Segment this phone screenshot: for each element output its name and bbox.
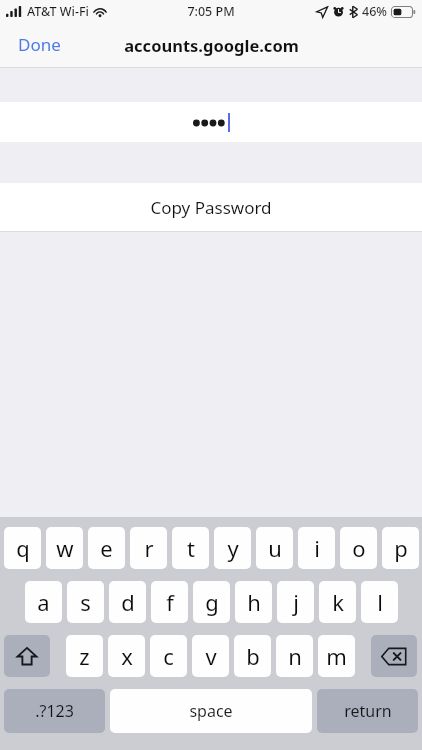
staticText: s — [80, 587, 91, 617]
button[interactable]: w — [46, 527, 83, 569]
staticText: w — [56, 533, 74, 563]
staticText: b — [246, 641, 260, 671]
staticText: r — [144, 533, 154, 563]
staticText: n — [288, 641, 302, 671]
staticText: 7:05 PM — [187, 3, 235, 20]
staticText: .?123 — [35, 700, 74, 722]
button[interactable]: Copy Password — [0, 183, 422, 231]
button[interactable]: k — [319, 581, 356, 623]
staticText: y — [227, 533, 239, 563]
button[interactable]: m — [318, 635, 355, 677]
staticText: f — [166, 587, 174, 617]
button[interactable]: a — [25, 581, 62, 623]
staticText: Done — [18, 33, 61, 56]
staticText: g — [205, 587, 219, 617]
staticText: d — [121, 587, 135, 617]
button[interactable]: n — [276, 635, 313, 677]
button[interactable]: r — [130, 527, 167, 569]
staticText: o — [352, 533, 366, 563]
staticText: c — [163, 641, 174, 671]
staticText: accounts.google.com — [124, 34, 299, 56]
staticText: return — [344, 700, 392, 722]
button[interactable]: u — [256, 527, 293, 569]
staticText: 46% — [362, 3, 387, 20]
button[interactable]: t — [172, 527, 209, 569]
button[interactable]: s — [67, 581, 104, 623]
staticText: AT&T Wi-Fi — [27, 3, 89, 20]
button[interactable]: d — [109, 581, 146, 623]
button[interactable]: c — [150, 635, 187, 677]
staticText: x — [121, 641, 133, 671]
button[interactable]: v — [192, 635, 229, 677]
button[interactable]: j — [277, 581, 314, 623]
button[interactable]: .?123 — [4, 689, 105, 733]
button[interactable]: Shift — [4, 635, 50, 677]
staticText: j — [293, 587, 299, 617]
staticText: l — [377, 587, 383, 617]
button[interactable]: x — [108, 635, 145, 677]
button[interactable]: f — [151, 581, 188, 623]
button[interactable]: b — [234, 635, 271, 677]
button[interactable]: p — [382, 527, 419, 569]
staticText: Copy Password — [150, 196, 272, 219]
staticText: m — [326, 641, 347, 671]
button[interactable]: return — [317, 689, 418, 733]
staticText: z — [79, 641, 90, 671]
button[interactable]: y — [214, 527, 251, 569]
staticText: k — [332, 587, 344, 617]
staticText: u — [268, 533, 282, 563]
button[interactable]: Done — [0, 25, 79, 64]
button[interactable]: l — [361, 581, 398, 623]
button[interactable]: e — [88, 527, 125, 569]
staticText: p — [394, 533, 408, 563]
staticText: e — [100, 533, 113, 563]
button[interactable]: h — [235, 581, 272, 623]
staticText: q — [16, 533, 30, 563]
staticText: h — [247, 587, 261, 617]
staticText: i — [314, 533, 320, 563]
staticText: t — [187, 533, 195, 563]
button[interactable] — [0, 102, 422, 142]
button[interactable]: Backspace — [371, 635, 417, 677]
staticText: v — [205, 641, 217, 671]
button[interactable]: o — [340, 527, 377, 569]
button[interactable]: z — [66, 635, 103, 677]
button[interactable]: g — [193, 581, 230, 623]
button[interactable]: q — [4, 527, 41, 569]
staticText: a — [37, 587, 50, 617]
button[interactable]: i — [298, 527, 335, 569]
staticText: space — [189, 700, 233, 722]
button[interactable]: space — [110, 689, 312, 733]
